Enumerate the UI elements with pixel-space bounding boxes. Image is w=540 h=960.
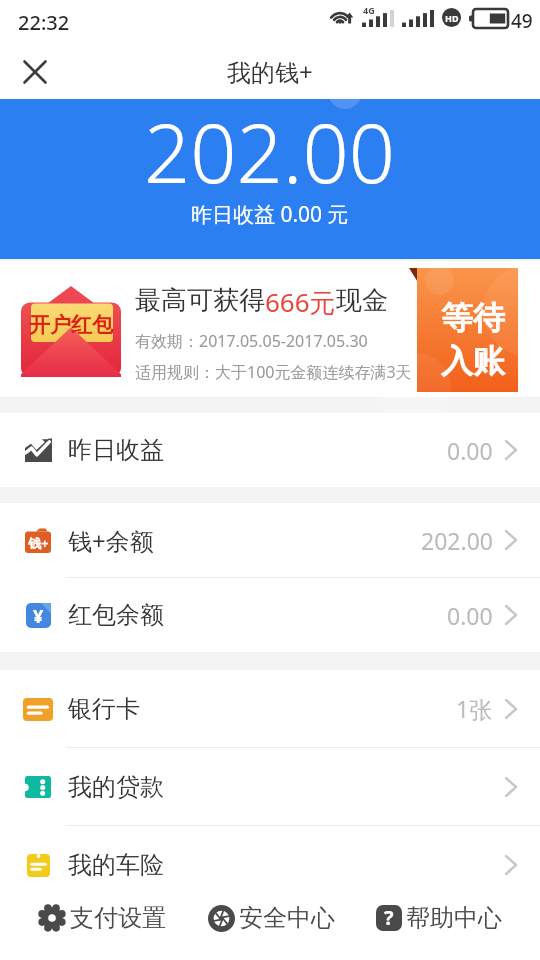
- staticText: 666元: [265, 284, 336, 320]
- staticText: HD: [445, 12, 459, 24]
- staticText: 现金: [336, 284, 388, 317]
- staticText: 49: [511, 8, 533, 34]
- staticText: 最高可获得: [135, 284, 265, 317]
- staticText: 昨日收益 0.00 元: [191, 200, 349, 229]
- staticText: 0.00: [447, 435, 493, 466]
- staticText: 红包余额: [68, 600, 164, 630]
- staticText: 1张: [456, 693, 493, 724]
- staticText: 适用规则：大于100元金额连续存满3天: [135, 361, 412, 383]
- staticText: 有效期：2017.05.05-2017.05.30: [135, 330, 368, 352]
- staticText: 昨日收益: [68, 435, 164, 465]
- button[interactable]: 安全中心: [204, 895, 339, 941]
- staticText: 钱+余额: [68, 524, 154, 557]
- staticText: 开户红包: [29, 312, 113, 338]
- button[interactable]: 我的车险: [0, 826, 540, 903]
- staticText: ?: [384, 904, 394, 930]
- button[interactable]: ¥: [0, 578, 540, 652]
- staticText: 我的车险: [68, 850, 164, 880]
- staticText: 202.00: [421, 525, 493, 556]
- staticText: 帮助中心: [406, 903, 502, 933]
- button[interactable]: 支付设置: [34, 895, 170, 941]
- staticText: 安全中心: [239, 903, 335, 933]
- staticText: 入账: [441, 341, 505, 381]
- staticText: 等待: [441, 298, 505, 338]
- button[interactable]: 钱+: [0, 503, 540, 577]
- button[interactable]: Close: [12, 49, 58, 95]
- button[interactable]: ?: [372, 895, 506, 941]
- button[interactable]: 昨日收益: [0, 413, 540, 487]
- staticText: ¥: [33, 604, 44, 629]
- staticText: 202.00: [144, 99, 396, 206]
- staticText: 钱+: [28, 534, 49, 552]
- staticText: 我的钱+: [227, 55, 313, 88]
- staticText: 我的贷款: [68, 772, 164, 802]
- button[interactable]: 我的贷款: [0, 748, 540, 825]
- staticText: 4G: [363, 4, 375, 16]
- staticText: 22:32: [18, 9, 70, 36]
- staticText: 支付设置: [70, 903, 166, 933]
- button[interactable]: 银行卡: [0, 670, 540, 747]
- staticText: 0.00: [447, 600, 493, 631]
- staticText: 银行卡: [68, 694, 140, 724]
